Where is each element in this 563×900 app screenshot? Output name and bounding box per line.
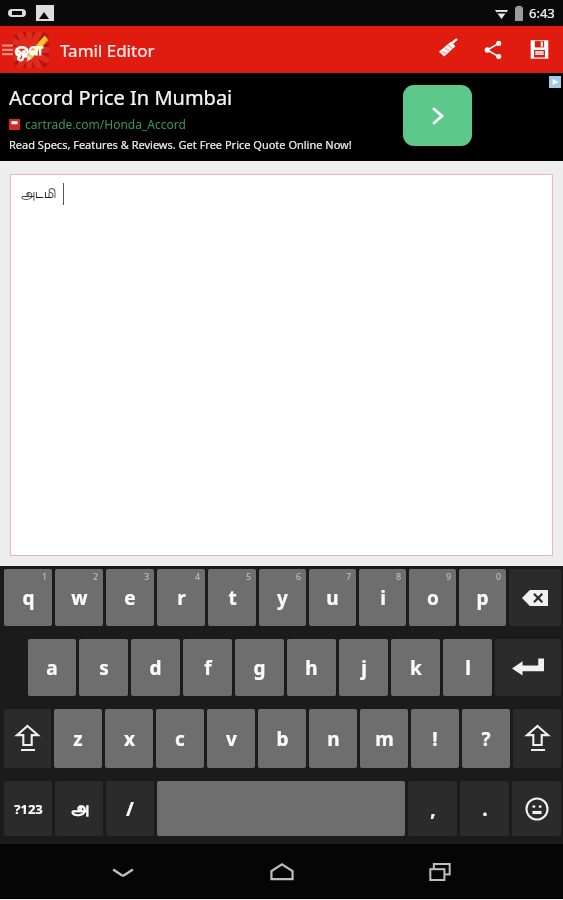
button[interactable]: . bbox=[460, 781, 509, 836]
staticText: cartrade.com/Honda_Accord bbox=[25, 116, 186, 132]
button[interactable]: r bbox=[157, 569, 205, 626]
staticText: 4 bbox=[195, 570, 201, 582]
button[interactable]: z bbox=[54, 709, 102, 768]
button[interactable]: Home bbox=[247, 844, 317, 899]
button[interactable]: Backspace bbox=[509, 569, 561, 626]
button[interactable]: Open ad bbox=[403, 85, 472, 146]
button[interactable]: Recent apps bbox=[405, 844, 475, 899]
staticText: w bbox=[71, 585, 88, 611]
button[interactable]: k bbox=[391, 639, 440, 696]
staticText: 6:43 bbox=[529, 4, 555, 22]
button[interactable]: g bbox=[235, 639, 284, 696]
staticText: 7 bbox=[346, 570, 352, 582]
button[interactable]: u bbox=[309, 569, 356, 626]
staticText: z bbox=[73, 726, 83, 752]
button[interactable]: ?123 bbox=[4, 781, 52, 836]
staticText: o bbox=[427, 585, 439, 611]
button[interactable]: , bbox=[408, 781, 457, 836]
button[interactable]: y bbox=[259, 569, 306, 626]
staticText: q bbox=[22, 585, 35, 611]
button[interactable]: Menu bbox=[0, 30, 14, 70]
staticText: f bbox=[204, 655, 212, 681]
button[interactable]: d bbox=[131, 639, 180, 696]
button[interactable]: s bbox=[79, 639, 128, 696]
staticText: p bbox=[476, 585, 489, 611]
button[interactable]: அடமி bbox=[10, 174, 553, 556]
staticText: a bbox=[46, 655, 58, 681]
button[interactable]: p bbox=[459, 569, 506, 626]
button[interactable]: l bbox=[443, 639, 492, 696]
staticText: m bbox=[375, 726, 394, 752]
staticText: g bbox=[253, 655, 266, 681]
staticText: 3 bbox=[144, 570, 150, 582]
staticText: 0 bbox=[496, 570, 502, 582]
staticText: u bbox=[326, 585, 339, 611]
staticText: 9 bbox=[446, 570, 452, 582]
button[interactable]: e bbox=[106, 569, 154, 626]
button[interactable]: h bbox=[287, 639, 336, 696]
button[interactable]: c bbox=[156, 709, 204, 768]
button[interactable]: o bbox=[409, 569, 456, 626]
button[interactable]: n bbox=[309, 709, 357, 768]
staticText: k bbox=[410, 655, 422, 681]
staticText: t bbox=[228, 585, 237, 611]
button[interactable]: Accord Price In Mumbai bbox=[0, 73, 563, 161]
staticText: Accord Price In Mumbai bbox=[9, 84, 233, 111]
button[interactable]: w bbox=[55, 569, 103, 626]
staticText: அடமி bbox=[20, 187, 56, 201]
staticText: 2 bbox=[93, 570, 99, 582]
staticText: 1 bbox=[42, 570, 48, 582]
button[interactable]: Save bbox=[516, 26, 563, 73]
button[interactable]: Hide keyboard bbox=[88, 844, 158, 899]
button[interactable]: i bbox=[359, 569, 406, 626]
staticText: b bbox=[276, 726, 289, 752]
button[interactable]: ! bbox=[411, 709, 459, 768]
button[interactable]: Change language bbox=[55, 781, 103, 836]
button[interactable]: x bbox=[105, 709, 153, 768]
button[interactable]: b bbox=[258, 709, 306, 768]
staticText: ? bbox=[481, 726, 491, 752]
button[interactable]: / bbox=[106, 781, 154, 836]
staticText: , bbox=[430, 796, 436, 822]
button[interactable]: Clear formatting bbox=[422, 26, 469, 73]
staticText: ?123 bbox=[14, 800, 43, 818]
staticText: l bbox=[465, 655, 471, 681]
button[interactable]: ? bbox=[462, 709, 510, 768]
button[interactable]: Emoji bbox=[512, 781, 561, 836]
staticText: . bbox=[482, 796, 488, 822]
staticText: ! bbox=[432, 726, 438, 752]
button[interactable]: Shift bbox=[4, 709, 51, 768]
staticText: 5 bbox=[246, 570, 252, 582]
button[interactable]: Shift bbox=[513, 709, 561, 768]
staticText: i bbox=[380, 585, 386, 611]
button[interactable]: v bbox=[207, 709, 255, 768]
staticText: / bbox=[126, 796, 134, 822]
staticText: v bbox=[226, 726, 237, 752]
staticText: h bbox=[305, 655, 318, 681]
staticText: Read Specs, Features & Reviews. Get Free… bbox=[9, 137, 352, 152]
staticText: d bbox=[149, 655, 162, 681]
button[interactable]: t bbox=[208, 569, 256, 626]
staticText: e bbox=[124, 585, 136, 611]
staticText: Tamil Editor bbox=[60, 39, 155, 62]
staticText: ஔ bbox=[13, 41, 43, 60]
staticText: c bbox=[175, 726, 185, 752]
staticText: 8 bbox=[396, 570, 402, 582]
button[interactable]: Enter bbox=[495, 639, 561, 696]
staticText: 6 bbox=[296, 570, 302, 582]
button[interactable]: f bbox=[183, 639, 232, 696]
staticText: s bbox=[99, 655, 109, 681]
staticText: y bbox=[277, 585, 288, 611]
button[interactable]: a bbox=[28, 639, 76, 696]
button[interactable]: j bbox=[339, 639, 388, 696]
staticText: r bbox=[177, 585, 186, 611]
button[interactable]: Share bbox=[469, 26, 516, 73]
staticText: x bbox=[124, 726, 135, 752]
button[interactable]: m bbox=[360, 709, 408, 768]
staticText: j bbox=[361, 655, 367, 681]
staticText: n bbox=[327, 726, 340, 752]
staticText: அ bbox=[70, 800, 88, 817]
button[interactable]: q bbox=[4, 569, 52, 626]
